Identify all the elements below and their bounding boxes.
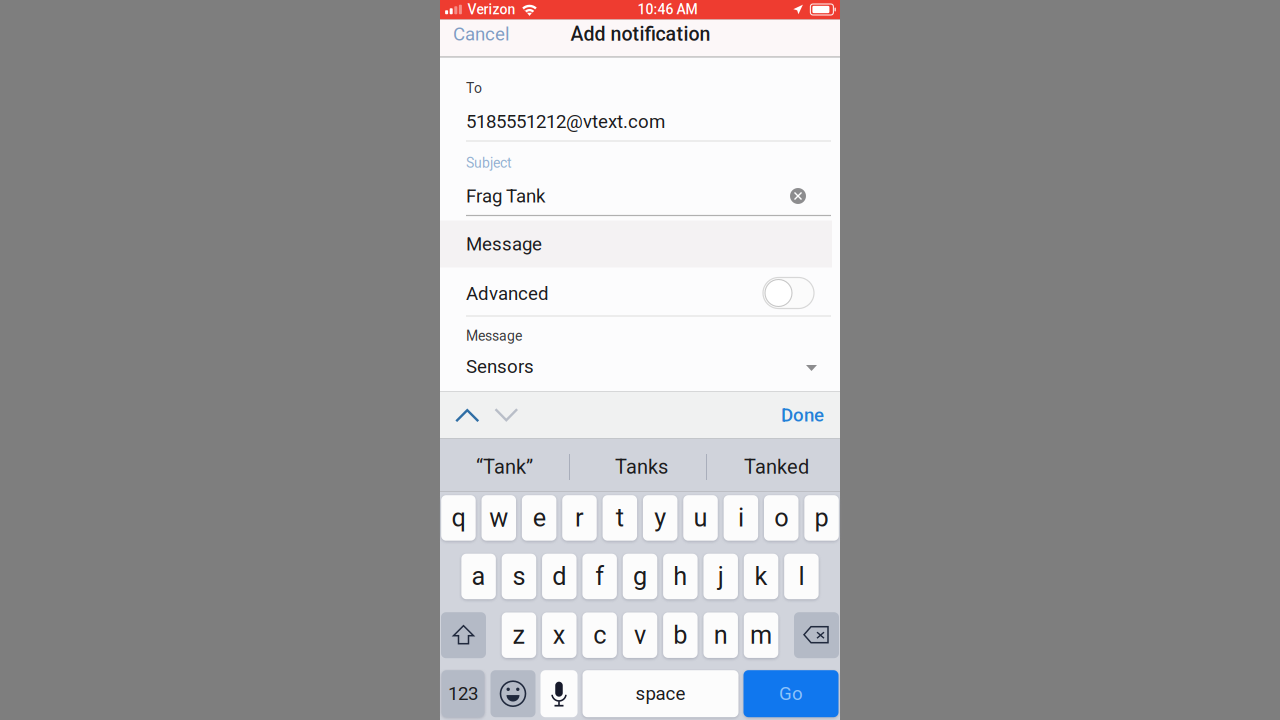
staticText: 5185551212@vtext.com [466, 111, 665, 132]
staticText: a [472, 562, 486, 591]
button[interactable]: Advanced, off [763, 277, 814, 308]
button[interactable]: l [784, 554, 819, 599]
button[interactable]: v [623, 612, 657, 658]
staticText: k [754, 562, 767, 591]
button[interactable]: “Tank” [440, 440, 569, 493]
button[interactable]: q [441, 495, 476, 541]
button[interactable]: d [542, 554, 577, 599]
staticText: l [798, 562, 804, 591]
button[interactable]: g [623, 554, 657, 599]
button[interactable]: i [724, 495, 758, 541]
staticText: u [693, 503, 707, 533]
staticText: p [815, 503, 829, 533]
staticText: z [512, 620, 525, 650]
button[interactable]: k [744, 554, 778, 599]
staticText: o [774, 503, 788, 533]
button[interactable]: e [522, 495, 556, 541]
button[interactable]: Tanks [570, 440, 706, 493]
button[interactable]: Dictate [540, 670, 577, 717]
button[interactable]: space [582, 670, 738, 717]
staticText: v [634, 620, 646, 650]
button[interactable]: t [603, 495, 637, 541]
button[interactable]: Tanked [707, 440, 840, 493]
staticText: r [575, 503, 584, 533]
button[interactable]: w [481, 495, 516, 541]
staticText: b [673, 620, 687, 650]
button[interactable]: Done [781, 391, 840, 438]
staticText: 10:46 AM [637, 1, 697, 18]
staticText: Verizon [467, 1, 515, 18]
button[interactable]: m [744, 612, 778, 658]
staticText: “Tank” [476, 455, 533, 479]
button[interactable]: o [764, 495, 798, 541]
staticText: 123 [448, 683, 478, 705]
staticText: g [633, 562, 647, 591]
staticText: x [553, 620, 566, 650]
button[interactable]: h [663, 554, 698, 599]
staticText: n [714, 620, 728, 650]
button[interactable]: n [703, 612, 738, 658]
staticText: Add notification [570, 22, 710, 45]
button[interactable]: c [582, 612, 617, 658]
staticText: To [466, 80, 482, 96]
staticText: t [616, 503, 624, 533]
staticText: s [512, 562, 525, 591]
button[interactable]: s [502, 554, 536, 599]
staticText: Tanked [744, 455, 809, 479]
button[interactable]: Next field [486, 392, 527, 439]
button[interactable]: Clear Subject [785, 183, 811, 209]
button[interactable]: r [562, 495, 597, 541]
button[interactable]: Shift [441, 612, 486, 658]
button[interactable]: a [461, 554, 496, 599]
staticText: Done [781, 404, 824, 426]
button[interactable]: Delete [794, 612, 839, 658]
button[interactable]: x [542, 612, 576, 658]
button[interactable]: f [582, 554, 617, 599]
staticText: m [750, 620, 772, 650]
staticText: Sensors [466, 356, 534, 377]
staticText: e [533, 503, 546, 533]
button[interactable]: z [502, 612, 536, 658]
staticText: i [738, 503, 744, 533]
button[interactable]: y [643, 495, 677, 541]
staticText: Advanced [466, 283, 549, 304]
staticText: Go [779, 683, 803, 705]
staticText: q [451, 503, 465, 533]
staticText: Cancel [453, 23, 510, 45]
staticText: space [635, 683, 685, 705]
button[interactable]: Go [743, 670, 838, 717]
button[interactable]: Emoji [490, 670, 535, 717]
button[interactable]: j [703, 554, 738, 599]
button[interactable]: Message [440, 220, 832, 267]
button[interactable]: b [663, 612, 698, 658]
staticText: h [673, 562, 687, 591]
button[interactable]: p [804, 495, 839, 541]
staticText: c [593, 620, 606, 650]
button[interactable]: Cancel [440, 19, 523, 56]
staticText: Message [466, 328, 522, 344]
staticText: Tanks [615, 455, 668, 479]
button[interactable]: u [683, 495, 718, 541]
button[interactable]: 123 [441, 670, 484, 717]
staticText: d [552, 562, 566, 591]
staticText: y [654, 503, 666, 533]
staticText: Message [466, 233, 542, 255]
staticText: w [489, 503, 508, 533]
staticText: j [718, 562, 724, 591]
staticText: Frag Tank [466, 185, 545, 207]
staticText: Subject [466, 155, 512, 171]
button[interactable]: Previous field [447, 393, 488, 440]
staticText: f [595, 562, 604, 591]
